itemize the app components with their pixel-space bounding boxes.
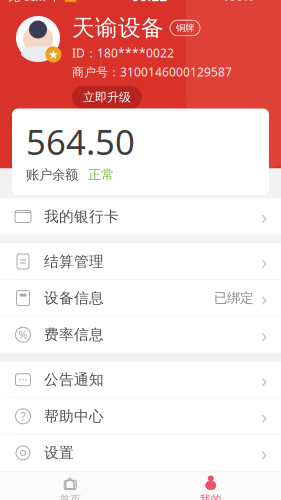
staticText: › — [261, 403, 267, 430]
button[interactable]: 设备信息 — [0, 280, 281, 316]
staticText: › — [261, 366, 267, 393]
button[interactable]: ⌂ — [0, 471, 140, 500]
staticText: 设备信息 — [44, 289, 104, 307]
staticText: 账户余额 — [26, 167, 78, 183]
button[interactable]: 结算管理 — [0, 243, 281, 279]
staticText: 商户号：3100146000129587 — [72, 64, 232, 80]
staticText: 📶 — [61, 0, 77, 3]
staticText: ⌂ — [63, 470, 77, 494]
staticText: 已绑定 — [214, 290, 253, 306]
staticText: 公告通知 — [44, 371, 104, 389]
staticText: 设置 — [44, 444, 74, 462]
staticText: 00:22 — [131, 0, 167, 5]
button[interactable]: 我的银行卡 — [0, 198, 281, 234]
staticText: 正常 — [88, 167, 114, 183]
staticText: ★ — [48, 48, 58, 60]
staticText: › — [261, 203, 267, 230]
staticText: 费率信息 — [44, 326, 104, 344]
staticText: › — [261, 440, 267, 466]
staticText: 我的银行卡 — [44, 207, 119, 225]
button[interactable]: % — [0, 317, 281, 353]
button[interactable]: 立即升级 — [72, 86, 142, 108]
staticText: ★ — [48, 48, 59, 61]
staticText: 铜牌 — [176, 22, 194, 34]
staticText: 100% — [222, 0, 254, 4]
button[interactable]: ? — [0, 398, 281, 434]
staticText: ID：180****0022 — [72, 45, 174, 61]
staticText: % — [18, 328, 27, 342]
staticText: 帮助中心 — [44, 407, 104, 425]
staticText: 天谕设备 — [72, 14, 164, 42]
staticText: ? — [20, 408, 25, 424]
staticText: › — [261, 321, 267, 348]
staticText: 首页 — [59, 493, 81, 500]
staticText: › — [261, 248, 267, 275]
button[interactable]: 设置 — [0, 435, 281, 471]
staticText: 564.50 — [26, 119, 135, 165]
staticText: 结算管理 — [44, 252, 104, 270]
staticText: › — [261, 285, 267, 311]
button[interactable]: 我的 — [140, 471, 281, 500]
staticText: 立即升级 — [83, 90, 131, 104]
staticText: 无 SIM 卡 — [8, 0, 61, 4]
button[interactable]: 公告通知 — [0, 362, 281, 398]
staticText: 我的 — [200, 493, 222, 500]
